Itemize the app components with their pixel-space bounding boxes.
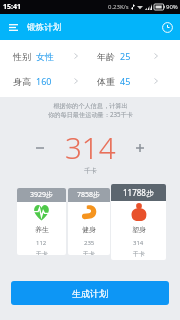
button[interactable]: Decrease <box>29 137 51 159</box>
button[interactable]: Increase <box>129 137 151 159</box>
staticText: 15:41 <box>3 2 21 12</box>
staticText: 养生 <box>35 225 49 234</box>
staticText: 身高 <box>13 76 31 87</box>
button[interactable]: Menu <box>5 19 21 35</box>
button[interactable]: 年龄 <box>84 42 164 70</box>
button[interactable]: 生成计划 <box>11 281 169 305</box>
staticText: 160 <box>36 75 52 87</box>
staticText: 塑身 <box>132 225 146 234</box>
staticText: 千卡 <box>84 167 97 175</box>
staticText: 3929步 <box>30 190 54 200</box>
staticText: 45 <box>120 75 131 87</box>
staticText: 千卡 <box>133 250 145 258</box>
staticText: 314 <box>65 127 116 167</box>
staticText: 112 <box>36 239 47 247</box>
button[interactable]: 性别 <box>0 42 84 70</box>
staticText: 7858步 <box>77 190 101 200</box>
staticText: 体重 <box>97 76 115 87</box>
staticText: 生成计划 <box>72 288 108 299</box>
staticText: 千卡 <box>36 250 48 255</box>
staticText: 0.23K/s <box>108 3 129 11</box>
button[interactable]: 7858步 <box>68 188 110 255</box>
staticText: 314 <box>133 239 144 247</box>
staticText: 25 <box>120 50 131 62</box>
button[interactable]: 体重 <box>84 67 164 95</box>
button[interactable]: 11788步 <box>111 184 166 260</box>
button[interactable]: 3929步 <box>17 188 66 255</box>
staticText: 健身 <box>82 225 96 234</box>
staticText: 11788步 <box>123 187 154 198</box>
staticText: 根据你的个人信息，计算出 <box>53 102 128 110</box>
staticText: 90% <box>166 3 178 11</box>
staticText: 千卡 <box>83 250 95 255</box>
staticText: 女性 <box>36 51 54 62</box>
staticText: 锻炼计划 <box>27 22 62 33</box>
button[interactable]: History <box>159 19 175 35</box>
staticText: 性别 <box>13 51 31 62</box>
staticText: 年龄 <box>97 51 115 62</box>
button[interactable]: 身高 <box>0 67 84 95</box>
staticText: 你的每日最佳运动量：235千卡 <box>48 110 133 118</box>
staticText: 235 <box>84 239 95 247</box>
